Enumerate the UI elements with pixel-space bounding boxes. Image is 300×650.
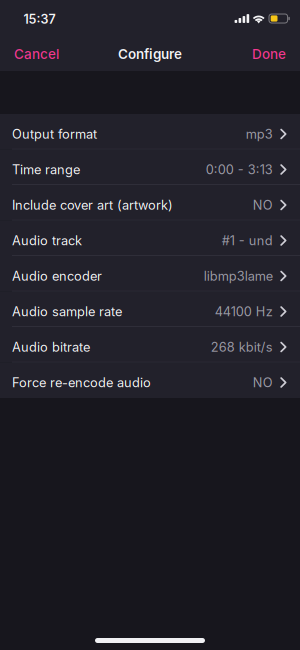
button[interactable]: Force re-encode audio [0,362,300,398]
staticText: mp3 [246,126,273,142]
staticText: Audio track [12,233,82,248]
button[interactable]: Audio encoder [0,256,300,291]
staticText: Done [252,46,286,62]
staticText: #1 - und [222,233,273,248]
staticText: NO [253,197,273,213]
button[interactable]: Include cover art (artwork) [0,185,300,220]
staticText: Cancel [14,46,59,62]
staticText: 15:37 [23,12,55,27]
staticText: 44100 Hz [215,304,273,319]
button[interactable]: Output format [0,114,300,149]
button[interactable]: Done [238,37,300,70]
staticText: Audio bitrate [12,339,90,355]
button[interactable]: Audio track [0,220,300,256]
button[interactable]: Cancel [0,37,73,70]
button[interactable]: Audio sample rate [0,291,300,327]
staticText: Force re-encode audio [12,375,151,390]
staticText: Output format [12,126,97,142]
staticText: Configure [118,46,182,62]
staticText: libmp3lame [204,268,273,284]
staticText: 268 kbit/s [211,339,273,355]
staticText: Include cover art (artwork) [12,197,173,213]
staticText: 0:00 - 3:13 [206,162,273,177]
button[interactable]: Time range [0,149,300,185]
staticText: Audio encoder [12,268,102,284]
staticText: Audio sample rate [12,304,122,319]
staticText: Time range [12,162,80,177]
button[interactable]: Audio bitrate [0,327,300,362]
staticText: NO [253,375,273,390]
